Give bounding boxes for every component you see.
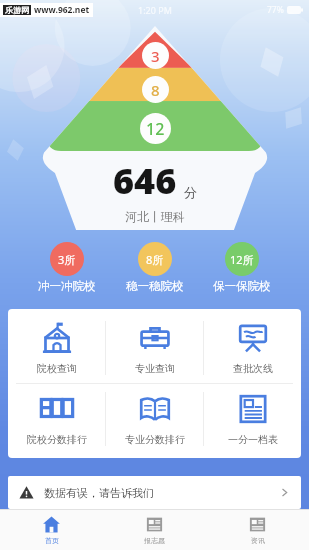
button[interactable]: 数据有误，请告诉我们 (8, 476, 301, 509)
staticText: 一分一档表 (228, 433, 278, 446)
button[interactable]: 专业查询 (106, 313, 203, 383)
staticText: 专业分数排行 (125, 433, 185, 446)
button[interactable]: 报志愿 (103, 510, 206, 550)
staticText: 3所 (58, 252, 76, 267)
button[interactable]: 8所 (124, 242, 186, 293)
staticText: 专业查询 (135, 362, 175, 375)
button[interactable]: 资讯 (206, 510, 309, 550)
staticText: 稳一稳院校 (126, 279, 184, 293)
staticText: 报志愿 (144, 536, 165, 545)
staticText: 冲一冲院校 (38, 279, 96, 293)
staticText: 首页 (45, 536, 59, 545)
staticText: 资讯 (251, 536, 265, 545)
staticText: 数据有误，请告诉我们 (44, 486, 154, 500)
staticText: 77% (267, 4, 284, 16)
staticText: www.962.net (34, 4, 90, 16)
button[interactable]: 首页 (0, 510, 103, 550)
staticText: 1:20 PM (138, 4, 172, 16)
staticText: 乐游网 (5, 5, 29, 15)
button[interactable]: 12所 (211, 242, 273, 293)
staticText: 12所 (230, 252, 254, 267)
staticText: 分 (184, 184, 197, 200)
button[interactable]: 3所 (36, 242, 98, 293)
staticText: 河北丨理科 (125, 209, 185, 224)
staticText: 8 (151, 80, 160, 100)
staticText: 院校分数排行 (27, 433, 87, 446)
staticText: 保一保院校 (213, 279, 271, 293)
staticText: 646 (113, 156, 177, 205)
staticText: 8所 (146, 252, 164, 267)
button[interactable]: 院校查询 (8, 313, 105, 383)
staticText: 院校查询 (37, 362, 77, 375)
button[interactable]: 一分一档表 (204, 384, 301, 454)
staticText: 12 (146, 118, 165, 140)
button[interactable]: 查批次线 (204, 313, 301, 383)
button[interactable]: 专业分数排行 (106, 384, 203, 454)
staticText: 3 (151, 46, 160, 66)
staticText: 查批次线 (233, 362, 273, 375)
button[interactable]: 3 (39, 26, 271, 230)
button[interactable]: 院校分数排行 (8, 384, 105, 454)
